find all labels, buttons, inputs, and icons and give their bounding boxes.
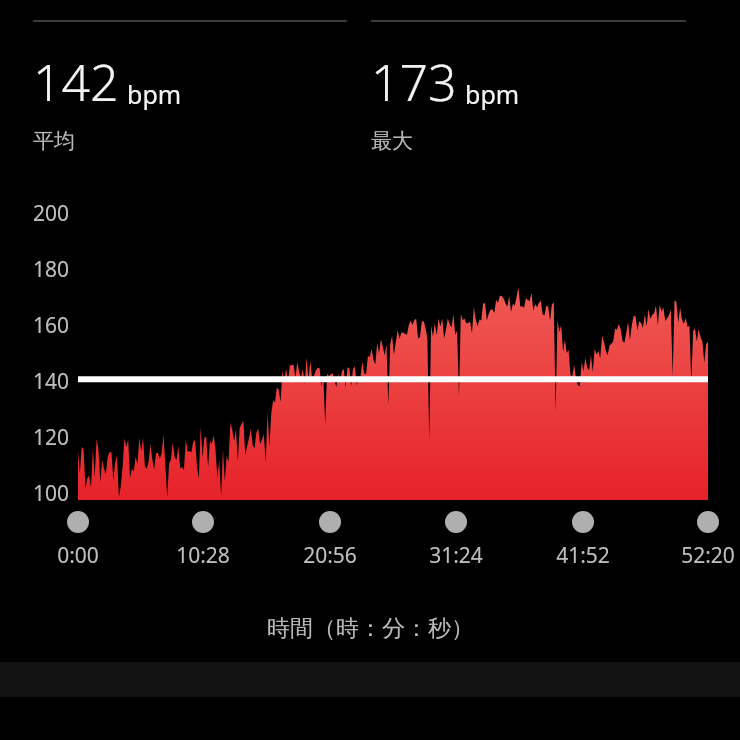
staticText: bpm bbox=[465, 77, 520, 111]
staticText: 平均 bbox=[33, 128, 75, 154]
staticText: 41:52 bbox=[556, 541, 610, 570]
staticText: 52:20 bbox=[681, 541, 735, 570]
button[interactable]: Heart rate chart bbox=[0, 0, 740, 740]
staticText: 120 bbox=[33, 423, 70, 452]
button[interactable]: 173 bbox=[371, 20, 710, 154]
staticText: 31:24 bbox=[429, 541, 483, 570]
staticText: 20:56 bbox=[303, 541, 357, 570]
staticText: 0:00 bbox=[57, 541, 99, 570]
staticText: 最大 bbox=[371, 128, 413, 154]
staticText: 時間（時：分：秒） bbox=[267, 614, 474, 643]
staticText: 160 bbox=[33, 311, 70, 340]
staticText: 180 bbox=[33, 255, 70, 284]
staticText: 140 bbox=[33, 367, 70, 396]
staticText: 100 bbox=[33, 479, 70, 508]
staticText: bpm bbox=[127, 77, 182, 111]
staticText: 10:28 bbox=[176, 541, 230, 570]
staticText: 142 bbox=[33, 48, 119, 116]
staticText: 173 bbox=[371, 48, 457, 116]
staticText: 200 bbox=[33, 199, 70, 228]
button[interactable]: 142 bbox=[33, 20, 371, 154]
